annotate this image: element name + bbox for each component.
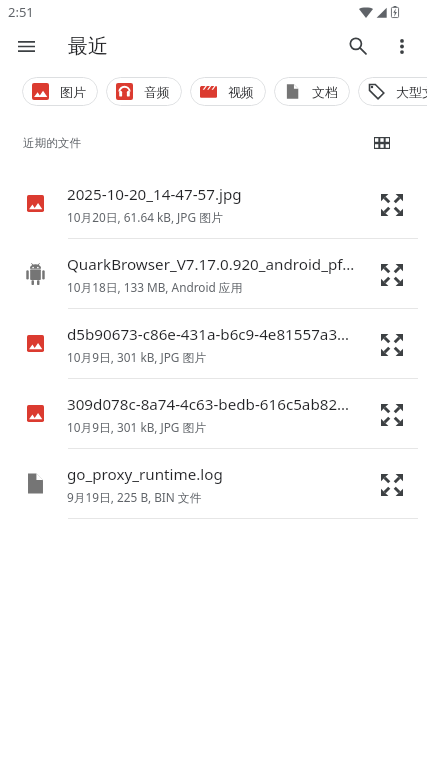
staticText: go_proxy_runtime.log (67, 464, 223, 485)
button[interactable]: Search (336, 25, 380, 67)
button[interactable]: Expand (370, 253, 414, 297)
staticText: 10月20日, 61.64 kB, JPG 图片 (67, 209, 223, 225)
staticText: 视频 (228, 84, 254, 100)
staticText: 10月9日, 301 kB, JPG 图片 (67, 419, 207, 435)
staticText: d5b90673-c86e-431a-b6c9-4e81557a3… (67, 324, 350, 345)
button[interactable]: Expand (370, 463, 414, 507)
button[interactable]: Expand (370, 323, 414, 367)
staticText: 10月9日, 301 kB, JPG 图片 (67, 349, 207, 365)
staticText: QuarkBrowser_V7.17.0.920_android_pf… (67, 254, 355, 275)
staticText: 大型文件 (396, 84, 427, 100)
button[interactable]: d5b90673-c86e-431a-b6c9-4e81557a3… (0, 309, 427, 378)
staticText: 文档 (312, 84, 338, 100)
staticText: 9月19日, 225 B, BIN 文件 (67, 489, 202, 505)
staticText: 2025-10-20_14-47-57.jpg (67, 184, 242, 205)
button[interactable]: 2025-10-20_14-47-57.jpg (0, 169, 427, 238)
staticText: 近期的文件 (23, 136, 81, 151)
staticText: 2:51 (8, 3, 34, 21)
button[interactable]: 图片 (22, 77, 98, 106)
staticText: 音频 (144, 84, 170, 100)
button[interactable]: More options (380, 25, 424, 67)
staticText: 最近 (68, 34, 108, 59)
button[interactable]: Open navigation drawer (4, 25, 48, 67)
button[interactable]: Expand (370, 183, 414, 227)
button[interactable]: QuarkBrowser_V7.17.0.920_android_pf… (0, 239, 427, 308)
button[interactable]: 视频 (190, 77, 266, 106)
staticText: 10月18日, 133 MB, Android 应用 (67, 279, 243, 295)
button[interactable]: go_proxy_runtime.log (0, 449, 427, 518)
button[interactable]: Switch to grid view (360, 121, 404, 165)
staticText: 309d078c-8a74-4c63-bedb-616c5ab82… (67, 394, 350, 415)
button[interactable]: 文档 (274, 77, 350, 106)
button[interactable]: 音频 (106, 77, 182, 106)
button[interactable]: Expand (370, 393, 414, 437)
staticText: 图片 (60, 84, 86, 100)
button[interactable]: 309d078c-8a74-4c63-bedb-616c5ab82… (0, 379, 427, 448)
button[interactable]: 大型文件 (358, 77, 427, 106)
